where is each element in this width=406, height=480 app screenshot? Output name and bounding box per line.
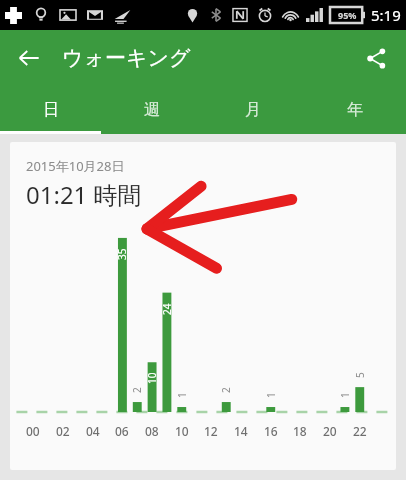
button[interactable]: 月 <box>202 86 304 134</box>
staticText: 5 <box>353 372 367 378</box>
staticText: 2 <box>130 387 144 393</box>
staticText: 10 <box>175 423 189 439</box>
staticText: 5:19 <box>371 5 401 25</box>
button[interactable]: Back <box>6 35 52 81</box>
button[interactable]: 週 <box>101 86 202 134</box>
staticText: 00 <box>26 423 40 439</box>
staticText: 35 <box>115 248 129 260</box>
staticText: 14 <box>234 423 248 439</box>
staticText: 2015年10月28日 <box>26 157 125 175</box>
staticText: 06 <box>115 423 129 439</box>
staticText: 08 <box>145 423 159 439</box>
staticText: 01:21 時間 <box>26 178 142 211</box>
staticText: 20 <box>323 423 337 439</box>
button[interactable]: Share <box>353 35 399 81</box>
staticText: 95% <box>338 9 357 21</box>
staticText: 18 <box>293 423 307 439</box>
button[interactable]: 年 <box>304 86 406 134</box>
staticText: 24 <box>160 303 174 315</box>
button[interactable]: 日 <box>0 86 101 134</box>
staticText: 04 <box>86 423 100 439</box>
staticText: 1 <box>175 392 189 398</box>
staticText: 22 <box>353 423 367 439</box>
button[interactable]: ウォーキング <box>62 45 191 71</box>
staticText: 年 <box>347 100 363 120</box>
staticText: 2 <box>219 387 233 393</box>
staticText: 1 <box>264 392 278 398</box>
staticText: 10 <box>145 372 159 384</box>
staticText: 02 <box>56 423 70 439</box>
staticText: 16 <box>264 423 278 439</box>
staticText: 週 <box>144 100 160 120</box>
staticText: 日 <box>43 100 59 120</box>
staticText: 12 <box>204 423 218 439</box>
staticText: 1 <box>338 392 352 398</box>
staticText: 月 <box>245 100 261 120</box>
button[interactable]: 2015年10月28日 <box>10 142 396 470</box>
